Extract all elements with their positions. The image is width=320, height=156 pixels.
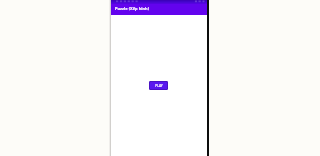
staticText: PLAY [155,84,163,88]
staticText: Puzzle (Xếp hình) [115,6,149,11]
button[interactable]: PLAY [149,81,168,90]
